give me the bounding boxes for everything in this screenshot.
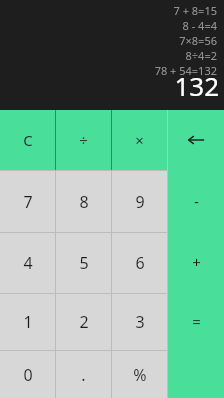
staticText: 1	[23, 311, 33, 333]
staticText: 5	[79, 252, 89, 274]
button[interactable]: 6	[112, 233, 167, 293]
button[interactable]: %	[112, 351, 167, 398]
button[interactable]: 0	[0, 351, 55, 398]
button[interactable]: =	[168, 292, 224, 398]
staticText: C	[23, 130, 33, 150]
button[interactable]: C	[0, 110, 55, 170]
button[interactable]: Backspace	[168, 110, 224, 170]
staticText: 132	[174, 68, 219, 103]
button[interactable]: 3	[112, 294, 167, 350]
staticText: 78 + 54=132	[8, 63, 217, 78]
button[interactable]: ×	[112, 110, 167, 170]
staticText: 3	[135, 311, 145, 333]
button[interactable]: +	[168, 231, 224, 292]
button[interactable]: 1	[0, 294, 55, 350]
button[interactable]: 2	[56, 294, 111, 350]
staticText: =	[192, 311, 201, 331]
staticText: ÷	[79, 130, 88, 150]
staticText: %	[133, 364, 147, 386]
staticText: 7×8=56	[8, 33, 217, 48]
button[interactable]: 7	[0, 171, 55, 232]
staticText: -	[194, 191, 199, 211]
button[interactable]: 9	[112, 171, 167, 232]
staticText: 7 + 8=15	[8, 3, 217, 18]
button[interactable]: 5	[56, 233, 111, 293]
staticText: .	[81, 364, 86, 386]
staticText: +	[192, 252, 201, 272]
staticText: 8 - 4=4	[8, 18, 217, 33]
button[interactable]: .	[56, 351, 111, 398]
staticText: ×	[135, 130, 144, 150]
button[interactable]: -	[168, 170, 224, 231]
button[interactable]: ÷	[56, 110, 111, 170]
staticText: 7	[23, 191, 33, 213]
staticText: 8	[79, 191, 89, 213]
staticText: 0	[23, 364, 33, 386]
staticText: 4	[23, 252, 33, 274]
button[interactable]: 8	[56, 171, 111, 232]
staticText: 6	[135, 252, 145, 274]
staticText: 8÷4=2	[8, 48, 217, 63]
staticText: 9	[135, 191, 145, 213]
button[interactable]: 4	[0, 233, 55, 293]
staticText: 2	[79, 311, 89, 333]
